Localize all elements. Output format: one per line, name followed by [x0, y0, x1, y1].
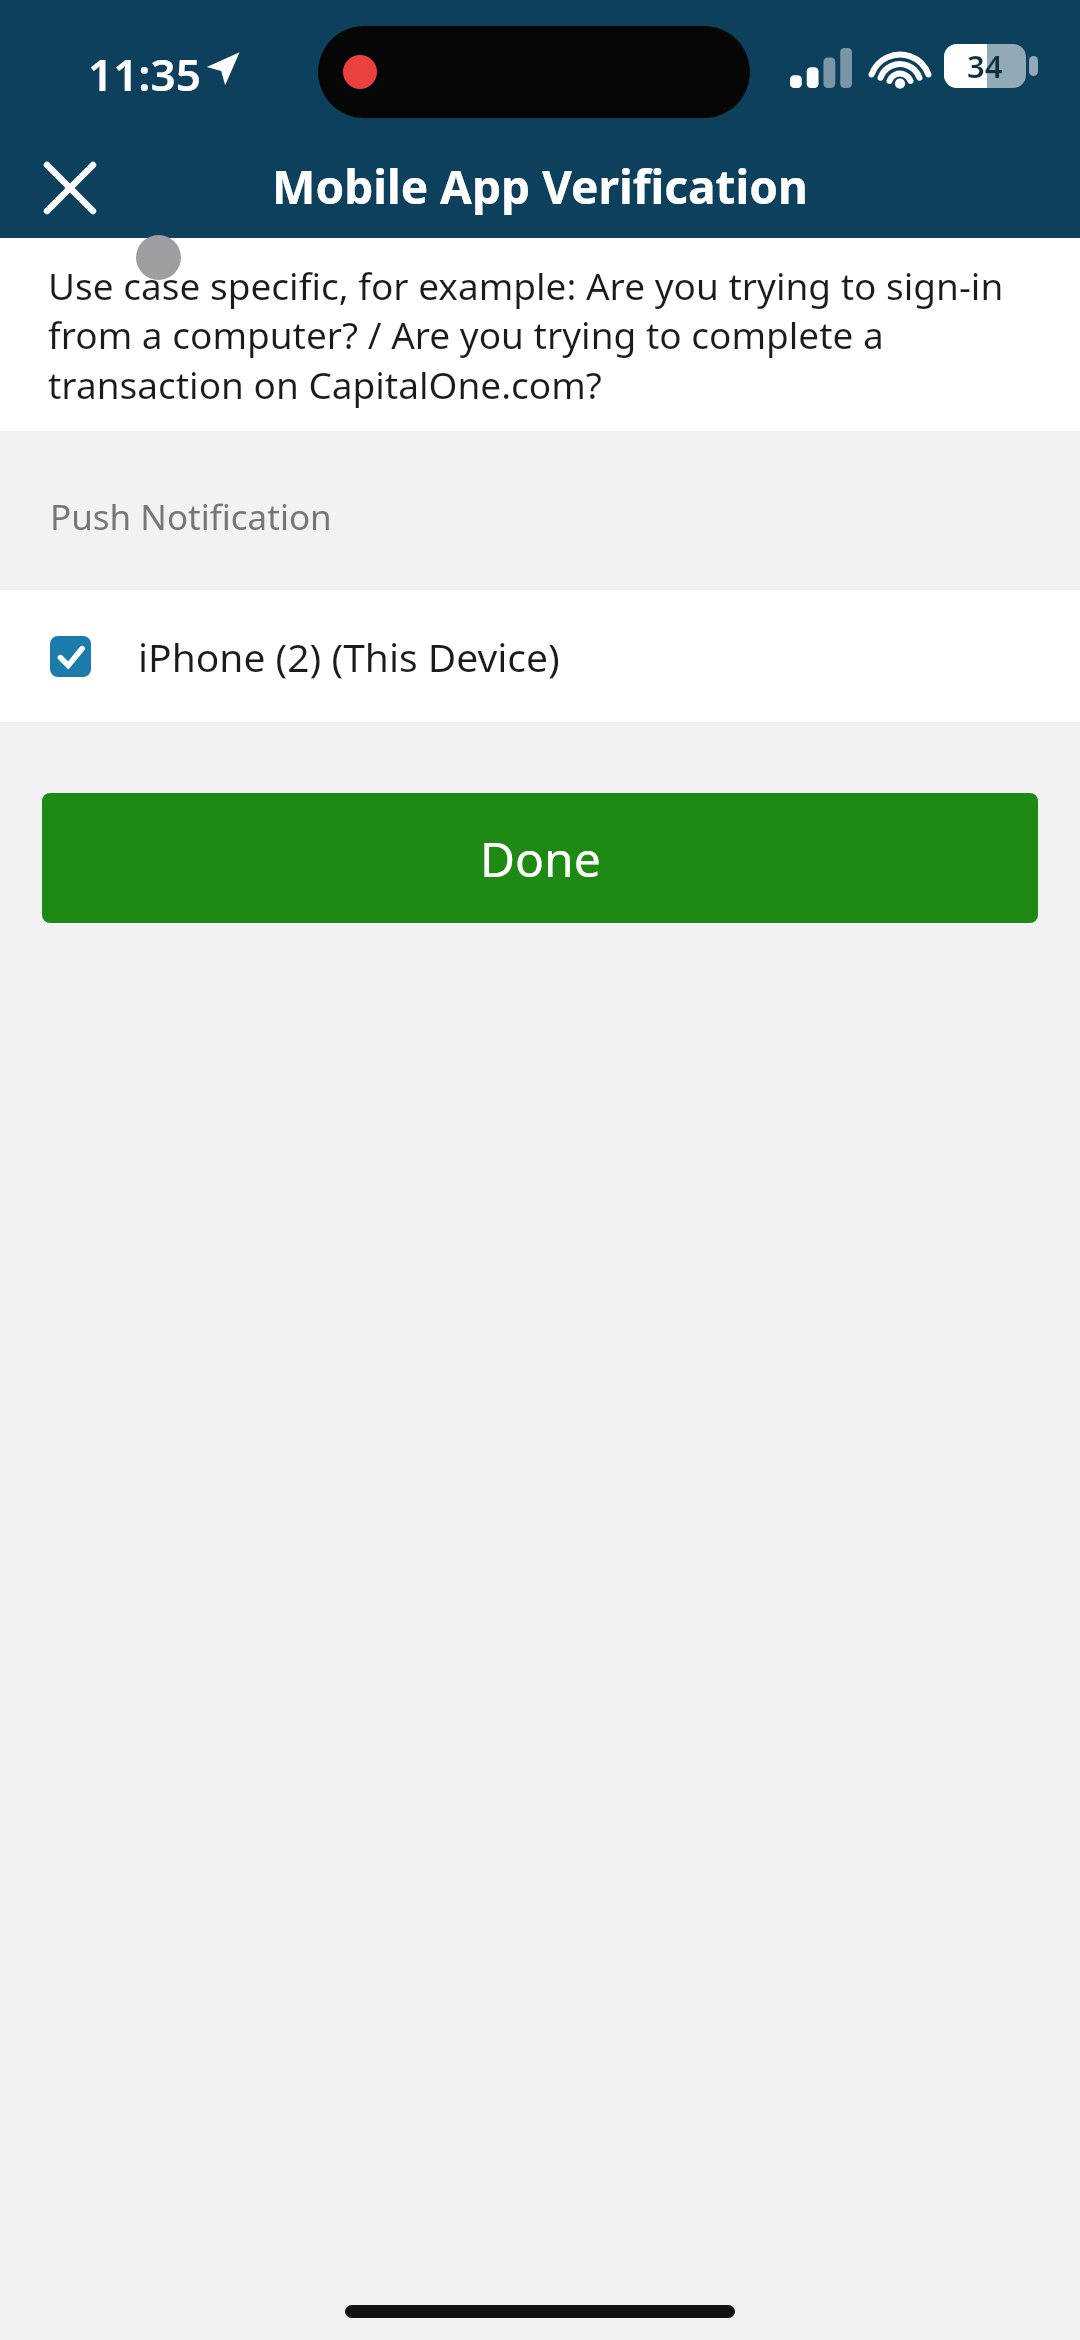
staticText: Done [480, 826, 601, 891]
staticText: 11:35 [88, 44, 201, 104]
button[interactable]: iPhone (2) (This Device) [0, 590, 1080, 722]
staticText: 34 [967, 45, 1003, 87]
staticText: Push Notification [50, 493, 332, 541]
staticText: iPhone (2) (This Device) [138, 630, 560, 683]
staticText: Mobile App Verification [272, 155, 808, 218]
button[interactable]: Done [42, 793, 1038, 923]
staticText: Use case specific, for example: Are you … [48, 260, 1038, 410]
button[interactable]: Close [28, 146, 112, 230]
